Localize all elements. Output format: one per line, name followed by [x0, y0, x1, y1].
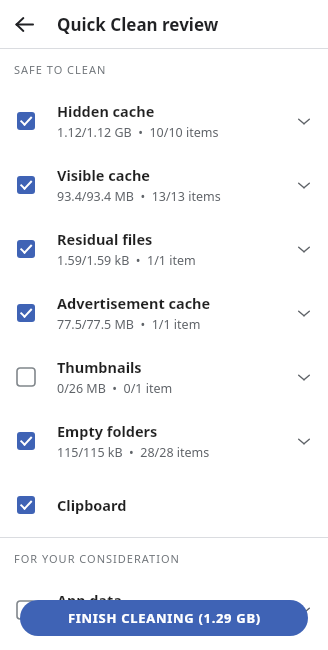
button[interactable]: Thumbnails: [0, 345, 328, 409]
button[interactable]: Clipboard: [0, 473, 328, 537]
staticText: FINISH CLEANING (1.29 GB): [68, 609, 261, 627]
button[interactable]: Advertisement cache: [0, 281, 328, 345]
staticText: Clipboard: [57, 495, 127, 515]
staticText: 93.4/93.4 MB • 13/13 items: [57, 188, 221, 205]
staticText: 1.59/1.59 kB • 1/1 item: [57, 252, 196, 269]
button[interactable]: Expand: [284, 357, 324, 397]
button[interactable]: FINISH CLEANING (1.29 GB): [20, 600, 308, 636]
button[interactable]: Expand: [284, 293, 324, 333]
button[interactable]: Visible cache: [0, 153, 328, 217]
button[interactable]: Residual files: [0, 217, 328, 281]
staticText: 0/26 MB • 0/1 item: [57, 380, 173, 397]
button[interactable]: Expand: [284, 165, 324, 205]
staticText: SAFE TO CLEAN: [14, 62, 107, 77]
button[interactable]: App data: [0, 578, 328, 642]
button[interactable]: Expand: [284, 101, 324, 141]
staticText: Quick Clean review: [57, 13, 219, 36]
button[interactable]: Expand: [284, 590, 324, 630]
staticText: Empty folders: [57, 421, 158, 441]
button[interactable]: Back: [0, 0, 48, 48]
staticText: Thumbnails: [57, 357, 142, 377]
staticText: Residual files: [57, 229, 153, 249]
button[interactable]: Expand: [284, 229, 324, 269]
staticText: FOR YOUR CONSIDERATION: [14, 551, 180, 566]
staticText: App data: [57, 590, 122, 610]
staticText: Visible cache: [57, 165, 151, 185]
staticText: 1.12/1.12 GB • 10/10 items: [57, 124, 219, 141]
staticText: 115/115 kB • 28/28 items: [57, 444, 210, 461]
staticText: 77.5/77.5 MB • 1/1 item: [57, 316, 201, 333]
button[interactable]: Expand: [284, 421, 324, 461]
button[interactable]: Empty folders: [0, 409, 328, 473]
staticText: Advertisement cache: [57, 293, 211, 313]
button[interactable]: Hidden cache: [0, 89, 328, 153]
staticText: Hidden cache: [57, 101, 155, 121]
